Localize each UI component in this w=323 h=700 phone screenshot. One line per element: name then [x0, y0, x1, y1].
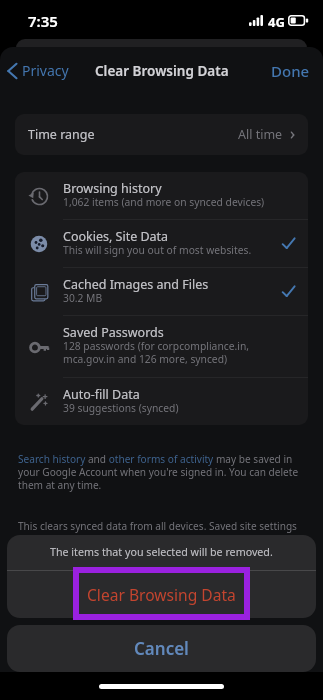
staticText: The items that you selected will be remo… — [50, 545, 273, 560]
button[interactable]: Browsing history — [15, 172, 308, 219]
staticText: 39 suggestions (synced) — [63, 401, 179, 415]
button[interactable]: Cookies, Site Data — [15, 220, 308, 267]
staticText: Search history and other forms of activi… — [18, 452, 305, 492]
staticText: Clear Browsing Data — [87, 584, 236, 605]
button[interactable]: Saved Passwords — [15, 316, 308, 377]
staticText: Clear Browsing Data — [95, 62, 229, 80]
staticText: Time range — [28, 126, 95, 143]
button[interactable]: Auto-fill Data — [15, 378, 308, 425]
staticText: Cancel — [134, 637, 189, 660]
staticText: 4G — [268, 13, 285, 31]
staticText: 30.2 MB — [63, 291, 103, 305]
button[interactable]: Done — [261, 53, 323, 89]
staticText: All time — [238, 126, 283, 143]
staticText: This will sign you out of most websites. — [63, 243, 252, 257]
staticText: Cached Images and Files — [63, 276, 209, 293]
staticText: mca.gov.in and 126 more, synced) — [63, 352, 228, 366]
button[interactable]: Privacy — [0, 53, 77, 88]
staticText: Done — [271, 61, 310, 81]
button[interactable]: Cached Images and Files — [15, 268, 308, 315]
staticText: 1,062 items (and more on synced devices) — [63, 195, 265, 209]
button[interactable]: Time range — [15, 114, 308, 155]
staticText: Saved Passwords — [63, 324, 164, 341]
button[interactable]: Clear Browsing Data — [7, 571, 316, 618]
staticText: Cookies, Site Data — [63, 228, 169, 245]
staticText: Browsing history — [63, 180, 162, 197]
staticText: Auto-fill Data — [63, 386, 140, 403]
staticText: 128 passwords (for corpcompliance.in, — [63, 339, 250, 353]
staticText: Privacy — [22, 61, 69, 80]
staticText: 7:35 — [28, 11, 58, 31]
staticText: This clears synced data from all devices… — [18, 519, 297, 533]
button[interactable]: Cancel — [7, 625, 316, 672]
